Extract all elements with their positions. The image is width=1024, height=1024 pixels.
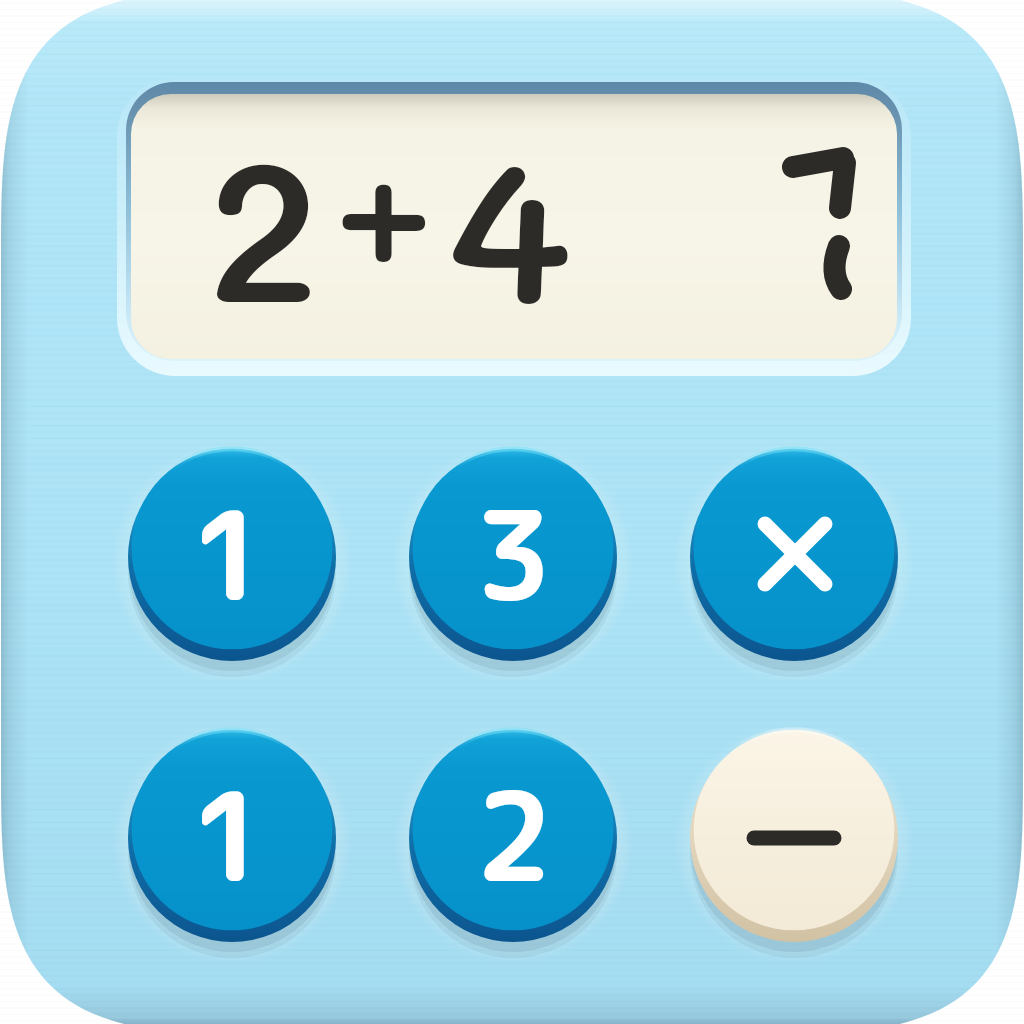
button[interactable]: Minus <box>690 730 898 938</box>
button[interactable]: Display 2+4 7 <box>131 84 899 357</box>
button[interactable]: 3 <box>409 449 617 657</box>
button[interactable]: Multiply <box>690 449 898 657</box>
button[interactable]: 1 <box>128 730 336 938</box>
button[interactable]: 1 <box>128 449 336 657</box>
button[interactable]: 2 <box>409 730 617 938</box>
